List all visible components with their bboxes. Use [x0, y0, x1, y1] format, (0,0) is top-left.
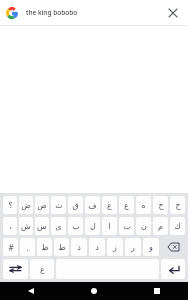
staticText: ت — [123, 222, 131, 231]
staticText: ؟ — [8, 201, 13, 210]
staticText: ن — [141, 222, 147, 231]
button[interactable]: ص — [35, 196, 49, 214]
button[interactable]: ع — [119, 196, 134, 214]
staticText: # — [8, 242, 14, 253]
button[interactable]: ك — [170, 217, 185, 235]
button[interactable]: ش — [19, 217, 33, 235]
button[interactable]: Backspace — [161, 238, 185, 256]
staticText: ع — [40, 265, 45, 274]
staticText: ط — [58, 243, 66, 252]
staticText: ه — [141, 201, 146, 210]
button[interactable]: Switch language — [3, 259, 28, 279]
staticText: ث — [55, 201, 63, 210]
staticText: ظ — [41, 243, 49, 252]
staticText: س — [37, 222, 47, 231]
staticText: ب — [72, 222, 80, 231]
button[interactable]: ب — [68, 217, 83, 235]
button[interactable]: س — [35, 217, 49, 235]
button[interactable]: ر — [125, 238, 141, 256]
button[interactable]: ح — [170, 196, 185, 214]
staticText: ی — [55, 222, 62, 231]
button[interactable]: غ — [102, 196, 117, 214]
staticText: غ — [107, 201, 112, 210]
button[interactable]: ه — [136, 196, 151, 214]
staticText: ص — [37, 201, 47, 210]
button[interactable]: ظ — [37, 238, 52, 256]
button[interactable]: . — [20, 238, 35, 256]
staticText: ح — [175, 201, 181, 210]
staticText: د — [95, 243, 99, 252]
staticText: ض — [21, 201, 31, 210]
button[interactable]: م — [153, 217, 168, 235]
staticText: ع — [124, 201, 129, 210]
staticText: ز — [113, 243, 117, 252]
button[interactable]: # — [3, 238, 18, 256]
button[interactable]: Home — [62, 282, 125, 300]
button[interactable]: ، — [3, 217, 17, 235]
staticText: ق — [72, 201, 79, 210]
button[interactable]: ط — [54, 238, 69, 256]
button[interactable]: ث — [51, 196, 66, 214]
button[interactable]: و — [143, 238, 159, 256]
button[interactable]: ض — [19, 196, 33, 214]
staticText: the king bobobo — [26, 8, 78, 17]
staticText: ، — [9, 222, 12, 231]
staticText: م — [158, 222, 163, 231]
staticText: ذ — [77, 243, 81, 252]
button[interactable]: Recent apps — [125, 282, 188, 300]
button[interactable]: ی — [51, 217, 66, 235]
button[interactable]: ف — [85, 196, 100, 214]
button[interactable]: Back — [0, 282, 62, 300]
staticText: خ — [158, 201, 164, 210]
button[interactable]: ز — [107, 238, 123, 256]
button[interactable]: ا — [102, 217, 117, 235]
button[interactable]: ؟ — [3, 196, 17, 214]
button[interactable]: Enter — [161, 259, 185, 279]
button[interactable]: د — [89, 238, 105, 256]
button[interactable]: ق — [68, 196, 83, 214]
staticText: ا — [108, 222, 111, 231]
staticText: ف — [88, 201, 97, 210]
staticText: ر — [131, 243, 135, 252]
button[interactable]: Clear search — [162, 2, 184, 24]
staticText: . — [26, 242, 29, 253]
staticText: ل — [90, 222, 96, 231]
button[interactable]: ن — [136, 217, 151, 235]
staticText: و — [149, 243, 153, 252]
staticText: ش — [21, 222, 31, 231]
staticText: ك — [174, 222, 181, 231]
button[interactable]: ذ — [71, 238, 87, 256]
button[interactable]: خ — [153, 196, 168, 214]
button[interactable]: ت — [119, 217, 134, 235]
button[interactable]: the king bobobo — [0, 0, 188, 25]
button[interactable]: ع — [30, 259, 54, 279]
button[interactable]: ل — [85, 217, 100, 235]
